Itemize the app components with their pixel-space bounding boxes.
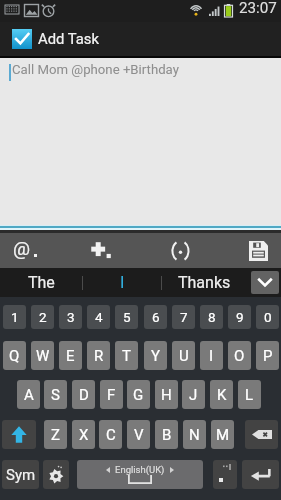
button[interactable]: N (183, 420, 206, 449)
staticText: Thanks (178, 273, 231, 292)
staticText: 23:07 (239, 0, 277, 17)
button[interactable]: A (17, 380, 40, 409)
button[interactable]: Z (44, 420, 67, 449)
button[interactable]: Save (238, 233, 278, 268)
button[interactable]: Enter (242, 460, 279, 489)
button[interactable]: T (115, 341, 138, 370)
button[interactable]: 5 (115, 305, 138, 329)
button[interactable]: B (155, 420, 178, 449)
button[interactable]: F (100, 380, 123, 409)
button[interactable]: More suggestions (251, 271, 279, 294)
button[interactable]: H (155, 380, 178, 409)
staticText: Z (51, 426, 60, 444)
staticText: J (189, 386, 198, 404)
staticText: U (179, 347, 189, 365)
button[interactable]: Q (3, 341, 26, 370)
staticText: L (245, 386, 254, 404)
staticText: M (216, 426, 230, 444)
button[interactable]: 2 (31, 305, 54, 329)
staticText: Add Task (38, 30, 99, 47)
button[interactable]: U (172, 341, 195, 370)
staticText: R (94, 347, 104, 365)
staticText: 1 (11, 309, 19, 325)
staticText: 9 (236, 309, 244, 325)
button[interactable]: Sym (2, 460, 39, 489)
staticText: O (234, 347, 245, 365)
staticText: Q (9, 347, 20, 365)
button[interactable]: M (211, 420, 234, 449)
staticText: B (162, 426, 172, 444)
button[interactable]: I (200, 341, 223, 370)
button[interactable]: 6 (144, 305, 167, 329)
button[interactable]: G (127, 380, 150, 409)
button[interactable]: R (87, 341, 110, 370)
button[interactable]: P (256, 341, 279, 370)
button[interactable]: 4 (87, 305, 110, 329)
staticText: X (79, 426, 89, 444)
button[interactable]: Space (77, 460, 203, 489)
button[interactable]: 8 (200, 305, 223, 329)
button[interactable]: D (72, 380, 95, 409)
button[interactable]: App icon (12, 29, 32, 49)
staticText: Sym (6, 466, 36, 484)
staticText: T (122, 347, 131, 365)
button[interactable]: Backspace (245, 420, 278, 449)
staticText: K (217, 386, 227, 404)
button[interactable]: Context (0, 233, 52, 268)
button[interactable]: L (238, 380, 261, 409)
staticText: 2 (39, 309, 47, 325)
button[interactable]: S (44, 380, 67, 409)
staticText: 5 (123, 309, 131, 325)
button[interactable]: Thanks (162, 268, 246, 297)
button[interactable]: 7 (172, 305, 195, 329)
button[interactable]: Y (144, 341, 167, 370)
button[interactable]: I (83, 268, 161, 297)
staticText: 3 (67, 309, 75, 325)
staticText: F (107, 386, 116, 404)
button[interactable]: J (182, 380, 205, 409)
staticText: 0 (264, 309, 272, 325)
staticText: E (66, 347, 75, 365)
staticText: A (24, 386, 34, 404)
staticText: I (120, 273, 125, 292)
button[interactable]: W (31, 341, 54, 370)
staticText: V (134, 426, 144, 444)
staticText: W (36, 347, 50, 365)
staticText: 4 (95, 309, 103, 325)
staticText: 7 (180, 309, 188, 325)
button[interactable]: X (72, 420, 95, 449)
staticText: The (28, 273, 55, 292)
button[interactable]: Keyboard settings (43, 460, 69, 489)
staticText: Call Mom @phone +Birthday (12, 62, 179, 77)
button[interactable]: 0 (256, 305, 279, 329)
button[interactable]: Add project (74, 233, 127, 268)
button[interactable]: Period (213, 460, 237, 489)
button[interactable]: C (99, 420, 122, 449)
staticText: H (161, 386, 172, 404)
button[interactable]: 3 (59, 305, 82, 329)
button[interactable]: Shift (2, 420, 36, 449)
button[interactable]: 1 (3, 305, 26, 329)
staticText: English(UK) (115, 464, 165, 475)
button[interactable]: 9 (228, 305, 251, 329)
staticText: P (263, 347, 273, 365)
staticText: N (189, 426, 200, 444)
staticText: I (209, 347, 214, 365)
staticText: S (51, 386, 60, 404)
button[interactable]: O (228, 341, 251, 370)
staticText: C (106, 426, 116, 444)
button[interactable]: Note (154, 233, 206, 268)
staticText: D (79, 386, 89, 404)
staticText: G (133, 386, 144, 404)
staticText: Y (151, 347, 161, 365)
button[interactable]: V (127, 420, 150, 449)
staticText: 6 (152, 309, 160, 325)
button[interactable]: K (210, 380, 233, 409)
staticText: 8 (208, 309, 216, 325)
button[interactable]: E (59, 341, 82, 370)
staticText: @ (13, 237, 31, 259)
button[interactable]: The (0, 268, 82, 297)
